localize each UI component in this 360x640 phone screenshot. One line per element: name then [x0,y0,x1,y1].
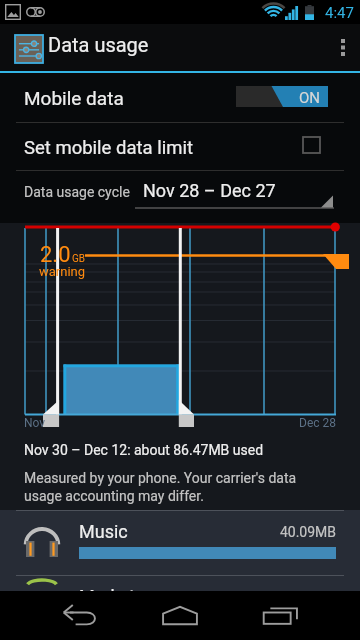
staticText: Data usage cycle [24,184,130,200]
staticText: Measured by your phone. Your carrier's d… [24,470,316,505]
staticText: Nov 28 – Dec 27 [143,180,276,201]
staticText: Set mobile data limit [24,137,193,159]
staticText: Mobile data [24,87,124,109]
button[interactable]: Market [0,576,360,591]
staticText: 2.0 [40,242,71,268]
staticText: 40.09MB [200,524,336,540]
button[interactable]: Mobile data [0,74,360,122]
staticText: 4:47 [325,4,354,22]
button[interactable]: Set mobile data limit [0,123,360,170]
staticText: warning [39,264,86,279]
staticText: Market [79,586,135,601]
button[interactable]: Settings [15,35,43,63]
staticText: Dec 28 [255,416,336,430]
staticText: Nov [24,416,46,430]
button[interactable]: Music [0,511,360,575]
button[interactable]: Nov 28 – Dec 27 [135,175,334,209]
staticText: ON [299,89,321,107]
staticText: Music [79,521,128,542]
button[interactable]: Home [140,591,220,640]
button[interactable]: Back [40,591,120,640]
button[interactable]: Recent apps [241,591,321,640]
button[interactable]: More options [326,24,360,71]
staticText: Data usage [48,33,149,56]
staticText: Nov 30 – Dec 12: about 86.47MB used [24,442,264,458]
staticText: GB [72,253,86,265]
